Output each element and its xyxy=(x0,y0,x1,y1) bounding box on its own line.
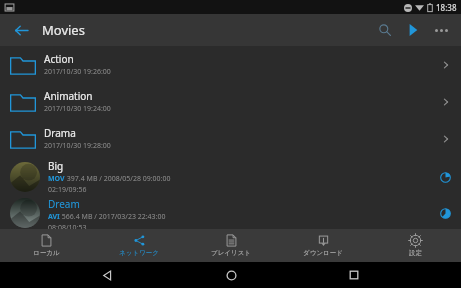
button[interactable]: プレイリスト xyxy=(185,229,277,262)
staticText: Animation xyxy=(44,89,93,103)
button[interactable]: ネットワーク xyxy=(93,229,185,262)
button[interactable]: Search xyxy=(371,16,399,44)
staticText: ローカル xyxy=(33,249,60,257)
button[interactable]: Recent apps xyxy=(337,262,371,288)
staticText: ネットワーク xyxy=(119,249,159,257)
staticText: ダウンロード xyxy=(303,249,343,257)
staticText: 2017/10/30 19:26:00 xyxy=(44,67,111,77)
button[interactable]: Back xyxy=(90,262,124,288)
staticText: AVI xyxy=(48,212,60,222)
button[interactable]: Animation xyxy=(0,83,461,120)
staticText: 2017/10/30 19:28:00 xyxy=(44,141,111,151)
staticText: 2017/10/30 19:24:00 xyxy=(44,104,111,114)
staticText: 08:08/10:53 xyxy=(48,223,87,229)
staticText: 設定 xyxy=(409,249,422,257)
staticText: 397.4 MB / 2008/05/28 09:00:00 xyxy=(65,174,171,184)
staticText: Movies xyxy=(42,21,85,39)
button[interactable]: Action xyxy=(0,46,461,83)
staticText: 02:19/09:56 xyxy=(48,185,87,195)
staticText: プレイリスト xyxy=(211,249,251,257)
button[interactable]: Drama xyxy=(0,120,461,157)
staticText: Drama xyxy=(44,126,76,140)
button[interactable]: Back xyxy=(8,17,34,43)
button[interactable]: 設定 xyxy=(369,229,461,262)
staticText: 566.4 MB / 2017/03/23 22:43:00 xyxy=(60,212,166,222)
staticText: Action xyxy=(44,52,74,66)
staticText: MOV xyxy=(48,174,65,184)
button[interactable]: Play xyxy=(399,16,427,44)
button[interactable]: Home xyxy=(214,262,248,288)
staticText: Big xyxy=(48,159,64,173)
staticText: 18:38 xyxy=(436,2,457,13)
button[interactable]: ローカル xyxy=(0,229,93,262)
button[interactable]: More options xyxy=(427,16,455,44)
staticText: Dream xyxy=(48,197,80,211)
button[interactable]: ダウンロード xyxy=(277,229,369,262)
button[interactable]: Big xyxy=(0,157,461,197)
button[interactable]: Dream xyxy=(0,197,461,229)
